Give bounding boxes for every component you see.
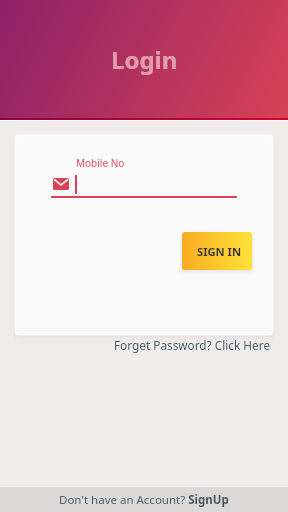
staticText: Don't have an Account? SignUp bbox=[59, 492, 229, 508]
button[interactable]: SIGN IN bbox=[182, 232, 252, 270]
staticText: Login bbox=[111, 43, 178, 76]
button[interactable]: Mobile No input field bbox=[51, 172, 237, 198]
button[interactable]: Forget Password? Click Here bbox=[110, 334, 275, 356]
staticText: Forget Password? Click Here bbox=[114, 337, 271, 353]
staticText: SIGN IN bbox=[197, 244, 242, 259]
staticText: Mobile No bbox=[76, 156, 125, 170]
button[interactable]: Don't have an Account? SignUp bbox=[0, 487, 288, 512]
